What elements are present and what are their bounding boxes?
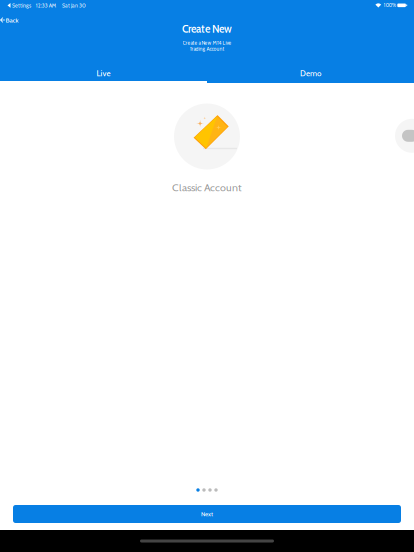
staticText: Back [5, 16, 18, 24]
staticText: Classic Account [172, 181, 242, 194]
staticText: Live [96, 69, 110, 78]
staticText: Create a New MT4 Live [182, 40, 231, 46]
staticText: 12:33 AM [36, 2, 56, 9]
button[interactable]: Classic Account [137, 102, 277, 194]
button[interactable]: Live [0, 64, 207, 83]
button[interactable]: Next account type [395, 119, 414, 153]
staticText: 100% [384, 2, 396, 8]
staticText: Trading Account [189, 46, 224, 52]
button[interactable]: Demo [207, 64, 414, 83]
staticText: Sat Jan 30 [62, 2, 86, 9]
staticText: Create New [182, 22, 232, 35]
button[interactable]: Next [13, 505, 401, 523]
button[interactable]: Back [0, 13, 42, 27]
staticText: Demo [300, 69, 321, 78]
staticText: Settings [12, 2, 31, 9]
staticText: Next [201, 510, 213, 518]
